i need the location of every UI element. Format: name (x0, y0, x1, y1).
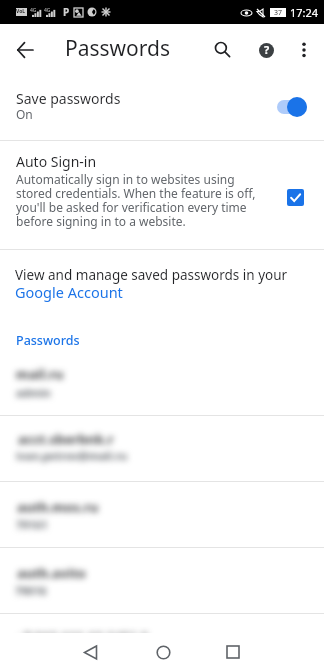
staticText: Passwords (16, 332, 80, 349)
staticText: 4G (30, 7, 37, 14)
staticText: 4G (44, 7, 51, 14)
button[interactable]: Navigate up (9, 34, 41, 66)
button[interactable]: +7 912 111 12 3456 0 (0, 614, 324, 636)
staticText: 17:24 (290, 5, 319, 20)
button[interactable]: auth.avito (0, 548, 324, 613)
staticText: On (16, 106, 33, 122)
staticText: mail.ru (16, 365, 64, 383)
button[interactable]: More options (288, 34, 320, 66)
button[interactable]: mail.ru (0, 352, 324, 415)
staticText: 37 (274, 8, 283, 17)
button[interactable]: Home (144, 633, 182, 671)
staticText: VoLTE (16, 8, 27, 16)
staticText: Auto Sign-in (16, 152, 97, 171)
staticText: P (63, 5, 70, 19)
staticText: 79016 (15, 583, 47, 598)
staticText: +7 912 111 12 3456 0 (16, 628, 149, 646)
staticText: admin (16, 385, 51, 400)
staticText: auth.mos.ru (17, 498, 99, 516)
staticText: Google Account (15, 282, 123, 302)
staticText: ivan.petrov@mail.ru (16, 448, 128, 463)
staticText: Passwords (65, 34, 171, 63)
staticText: Save passwords (16, 89, 121, 108)
staticText: auth.avito (17, 564, 86, 582)
button[interactable]: Recent apps (214, 633, 252, 671)
button[interactable]: acct.sberbnk.r (0, 416, 324, 481)
staticText: ? (264, 43, 270, 57)
button[interactable]: View and manage saved passwords in your (0, 250, 324, 318)
staticText: View and manage saved passwords in your (15, 266, 288, 284)
staticText: Automatically sign in to websites using … (16, 171, 256, 229)
button[interactable]: Help & feedback (250, 34, 282, 66)
button[interactable]: Search (207, 34, 239, 66)
staticText: 79161 (16, 517, 48, 532)
button[interactable]: Back (71, 633, 109, 671)
staticText: acct.sberbnk.r (18, 430, 114, 448)
button[interactable]: Auto Sign-in (0, 141, 324, 249)
button[interactable]: auth.mos.ru (0, 482, 324, 547)
button[interactable]: Save passwords (0, 75, 324, 140)
